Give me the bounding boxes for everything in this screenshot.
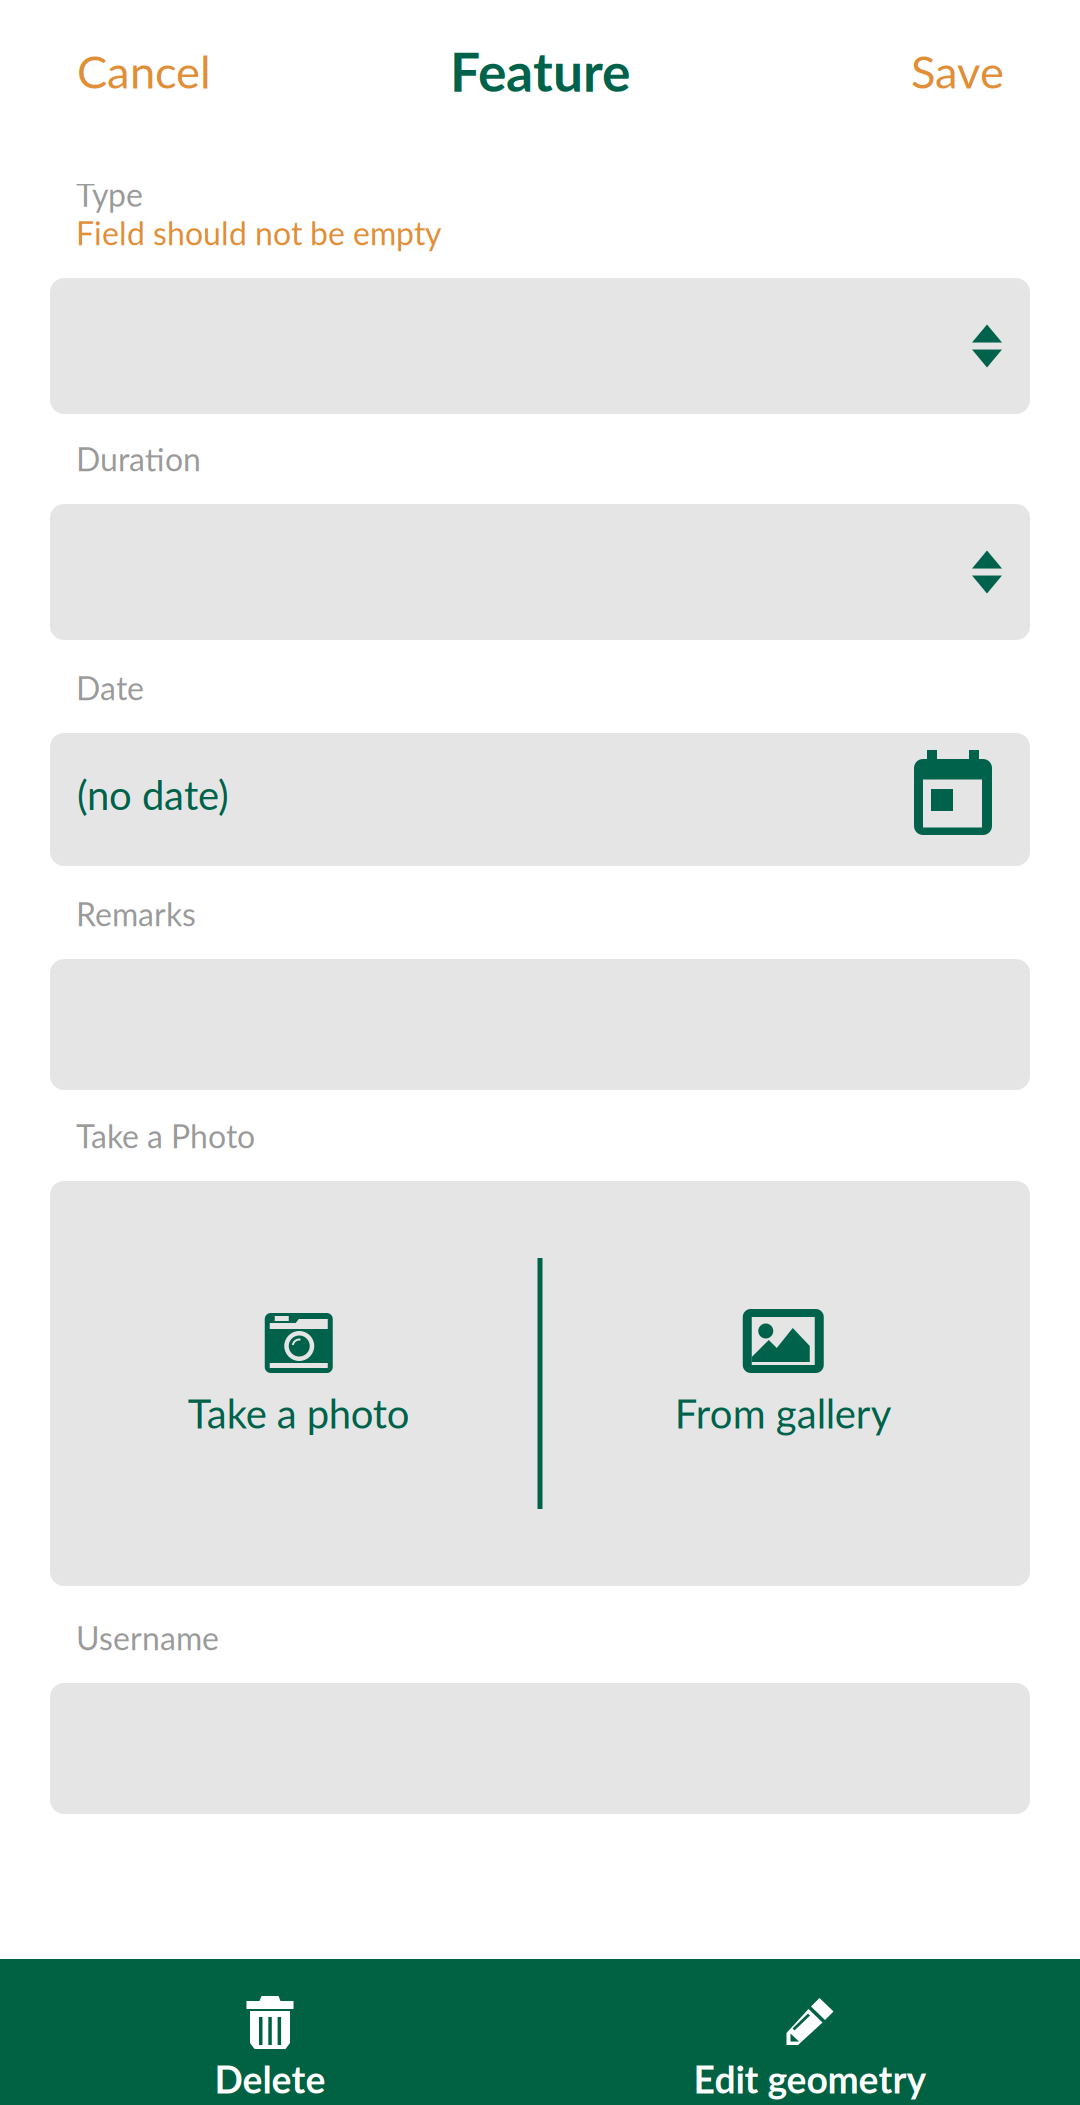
staticText: Feature — [450, 39, 630, 103]
staticText: Duration — [76, 440, 201, 478]
staticText: Take a Photo — [76, 1117, 255, 1155]
staticText: Type — [76, 175, 143, 214]
button[interactable]: Save — [911, 44, 1004, 98]
staticText: Edit geometry — [693, 2057, 926, 2101]
staticText: Delete — [214, 2057, 325, 2101]
staticText: Save — [911, 44, 1004, 98]
button[interactable]: From gallery — [542, 1181, 1030, 1586]
staticText: Cancel — [77, 44, 211, 98]
button[interactable]: Edit geometry — [540, 1959, 1080, 2105]
staticText: Remarks — [76, 895, 196, 933]
staticText: Field should not be empty — [76, 214, 441, 252]
staticText: From gallery — [675, 1389, 892, 1437]
button[interactable]: Delete — [0, 1959, 540, 2105]
button[interactable]: Take a photo — [50, 1181, 537, 1586]
button[interactable]: Type — [50, 278, 1030, 414]
button[interactable]: Cancel — [77, 44, 211, 98]
staticText: Date — [76, 669, 144, 707]
staticText: (no date) — [77, 770, 229, 818]
button[interactable]: Date — [50, 733, 1030, 866]
staticText: Username — [76, 1619, 219, 1657]
staticText: Take a photo — [188, 1389, 410, 1437]
button[interactable]: Duration — [50, 504, 1030, 640]
